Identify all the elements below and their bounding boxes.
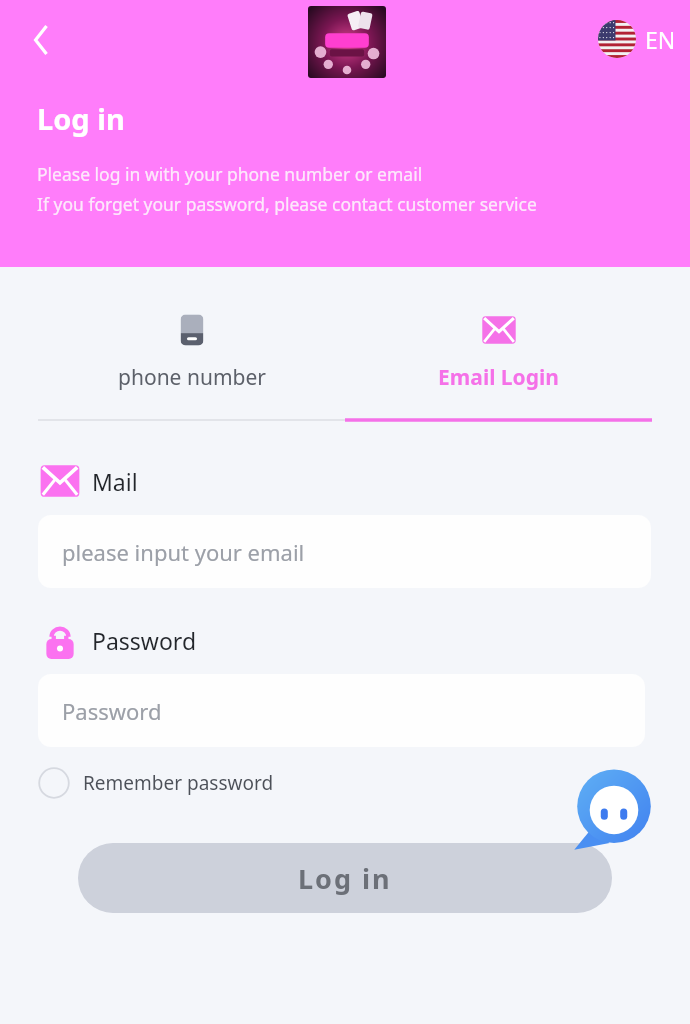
- staticText: Please log in with your phone number or …: [37, 162, 423, 186]
- button[interactable]: Password: [38, 618, 197, 662]
- button[interactable]: phone number: [38, 267, 345, 423]
- staticText: phone number: [118, 363, 266, 392]
- button[interactable]: please input your email: [38, 515, 651, 588]
- button[interactable]: F9 Games logo: [308, 6, 386, 78]
- staticText: Password: [62, 696, 162, 726]
- button[interactable]: Customer service chat: [568, 763, 660, 855]
- staticText: Log in: [37, 99, 125, 138]
- button[interactable]: Remember password: [38, 763, 274, 803]
- button[interactable]: Mail: [38, 459, 138, 503]
- button[interactable]: Log in: [78, 843, 612, 913]
- button[interactable]: Back: [14, 14, 66, 66]
- staticText: Mail: [92, 466, 138, 497]
- button[interactable]: Password: [38, 674, 645, 747]
- button[interactable]: EN: [594, 16, 680, 62]
- staticText: Password: [92, 625, 197, 656]
- staticText: Log in: [298, 860, 392, 897]
- staticText: please input your email: [62, 537, 305, 567]
- staticText: EN: [645, 24, 676, 55]
- staticText: If you forget your password, please cont…: [37, 192, 537, 216]
- staticText: Remember password: [83, 770, 274, 796]
- button[interactable]: Email Login: [345, 267, 652, 423]
- staticText: Email Login: [438, 363, 559, 392]
